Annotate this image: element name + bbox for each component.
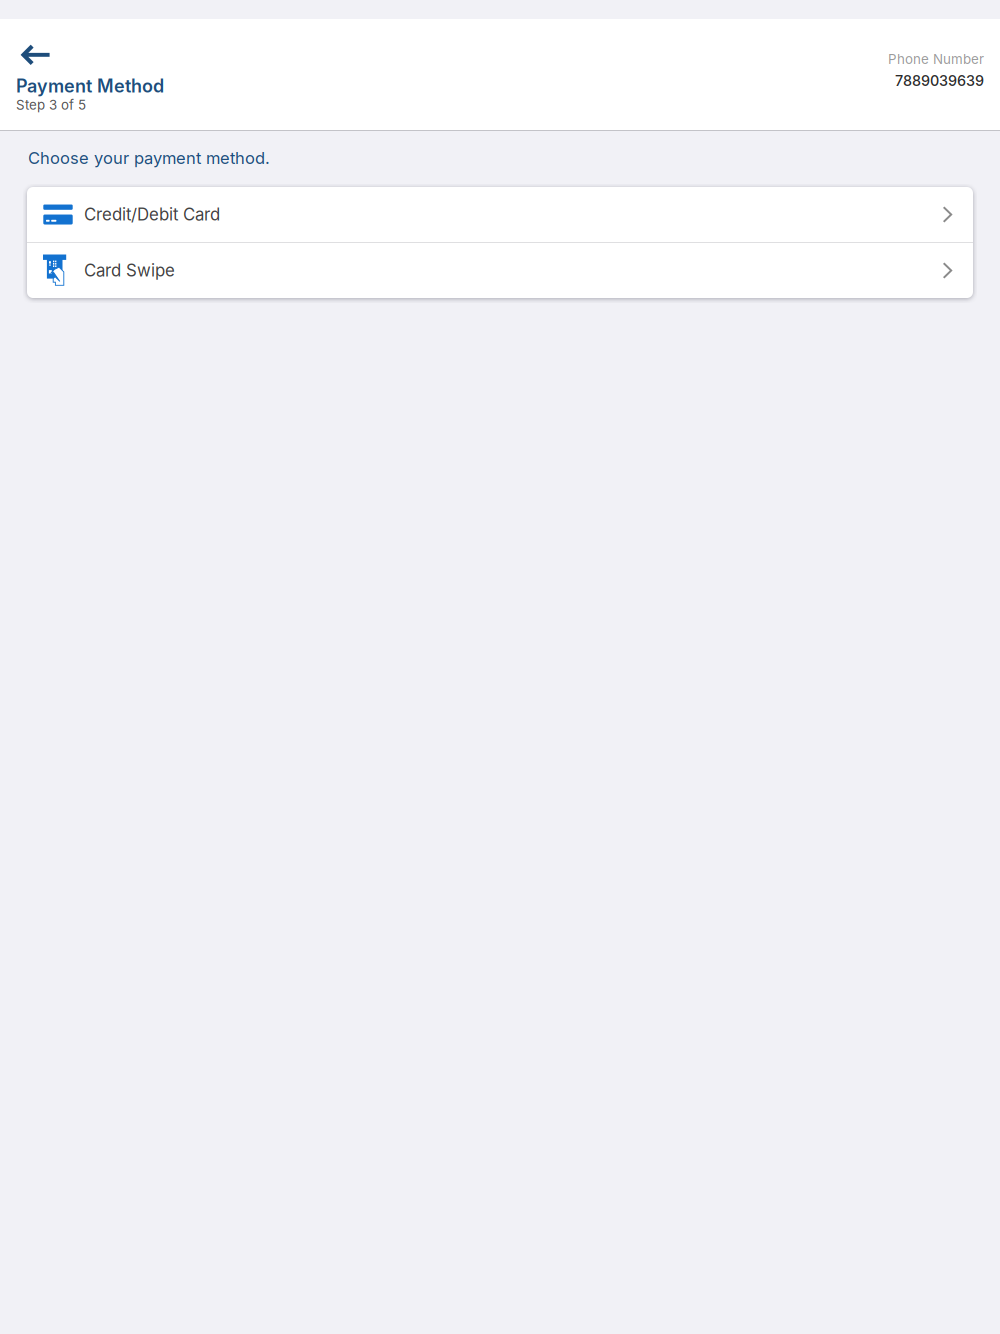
button[interactable]: Back xyxy=(0,19,64,75)
staticText: 7889039639 xyxy=(895,72,984,89)
staticText: Credit/Debit Card xyxy=(84,204,220,225)
staticText: Step 3 of 5 xyxy=(16,97,86,113)
button[interactable]: Card Swipe xyxy=(27,243,973,298)
staticText: Choose your payment method. xyxy=(28,148,270,168)
staticText: Phone Number xyxy=(888,51,984,67)
button[interactable]: Credit/Debit Card xyxy=(27,187,973,242)
staticText: Payment Method xyxy=(16,75,164,97)
staticText: Card Swipe xyxy=(84,260,175,281)
